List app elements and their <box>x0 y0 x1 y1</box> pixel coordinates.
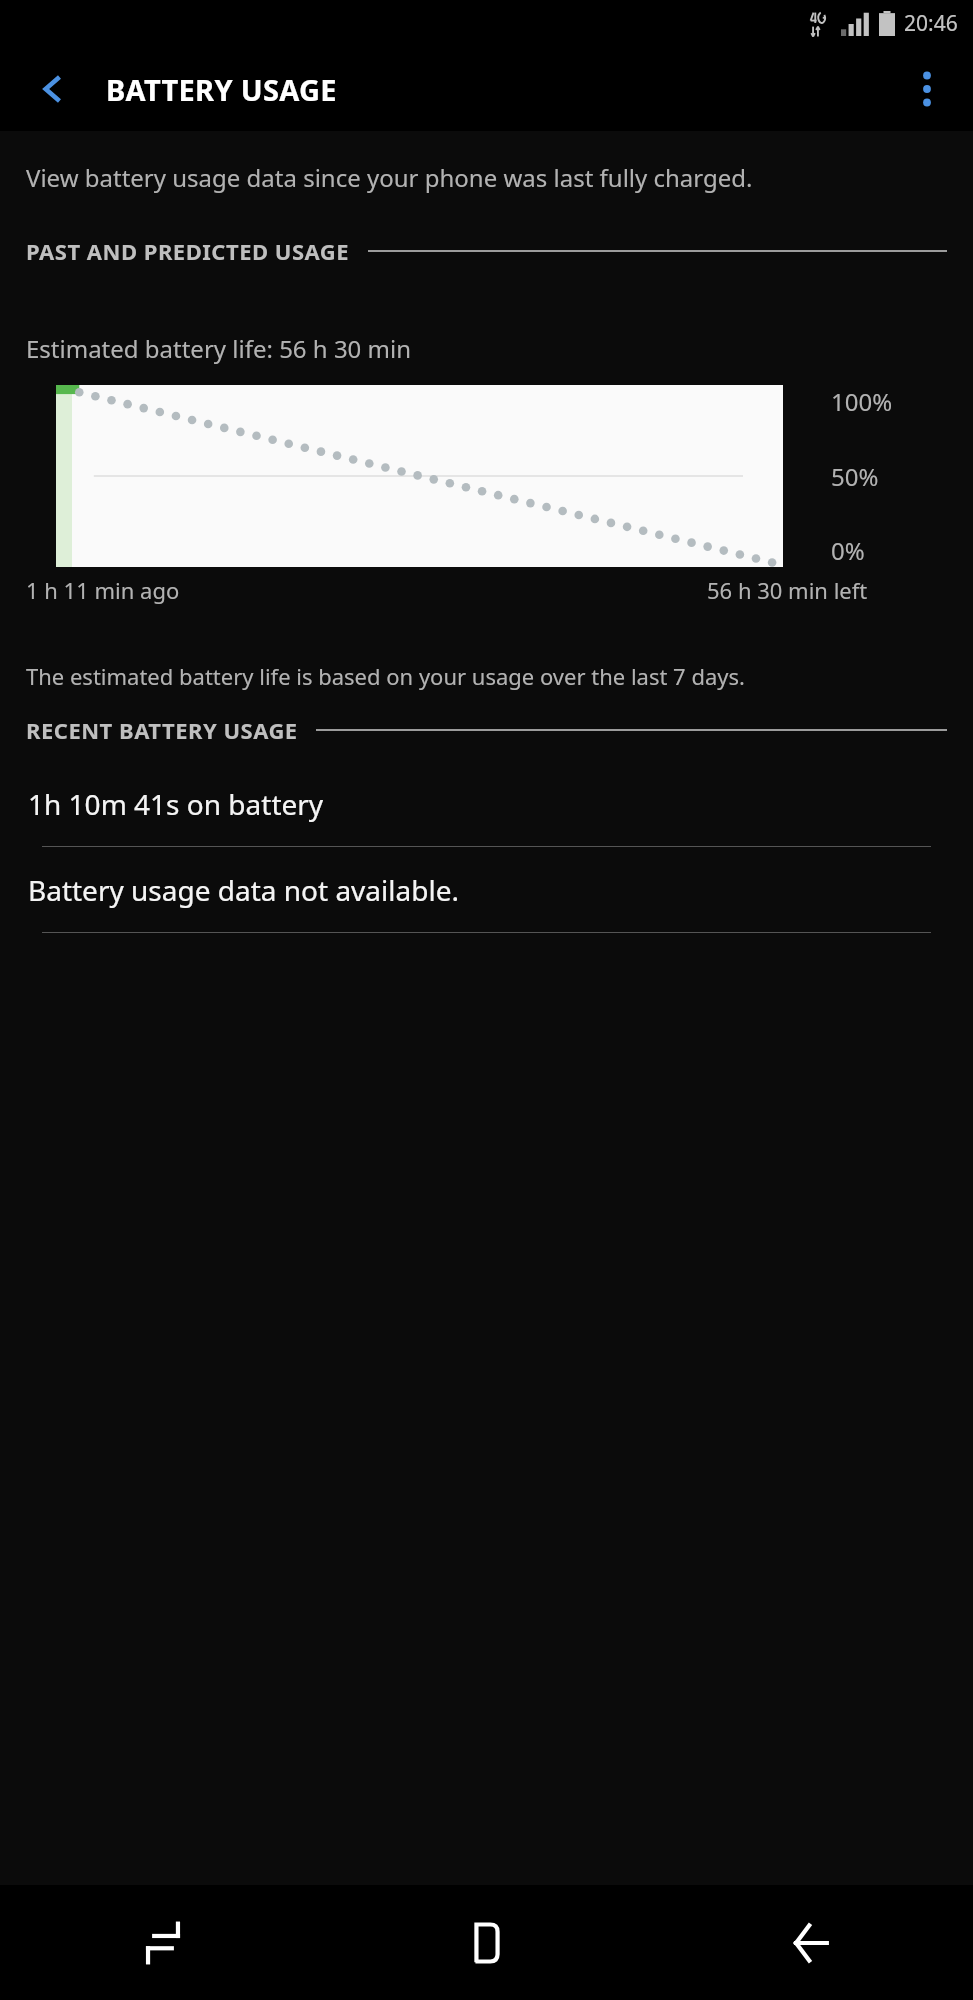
staticText: BATTERY USAGE <box>106 70 337 109</box>
button[interactable]: Recents <box>0 1885 325 2000</box>
button[interactable]: Battery usage data not available. <box>0 847 973 933</box>
staticText: 20:46 <box>904 9 958 38</box>
staticText: RECENT BATTERY USAGE <box>26 715 298 745</box>
staticText: Battery usage data not available. <box>28 871 459 909</box>
staticText: 1 h 11 min ago <box>26 575 180 605</box>
button[interactable]: More options <box>897 59 957 119</box>
button[interactable]: Home <box>325 1885 649 2000</box>
staticText: The estimated battery life is based on y… <box>26 661 745 691</box>
staticText: 100% <box>831 385 893 418</box>
staticText: Estimated battery life: 56 h 30 min <box>26 332 412 365</box>
staticText: 0% <box>831 534 865 567</box>
staticText: View battery usage data since your phone… <box>26 161 753 194</box>
staticText: 50% <box>831 460 879 493</box>
staticText: PAST AND PREDICTED USAGE <box>26 236 350 266</box>
staticText: 56 h 30 min left <box>707 575 868 605</box>
button[interactable]: Back <box>649 1885 973 2000</box>
button[interactable]: Navigate up <box>24 61 80 117</box>
staticText: 1h 10m 41s on battery <box>28 785 324 823</box>
button[interactable]: 1h 10m 41s on battery <box>0 761 973 847</box>
